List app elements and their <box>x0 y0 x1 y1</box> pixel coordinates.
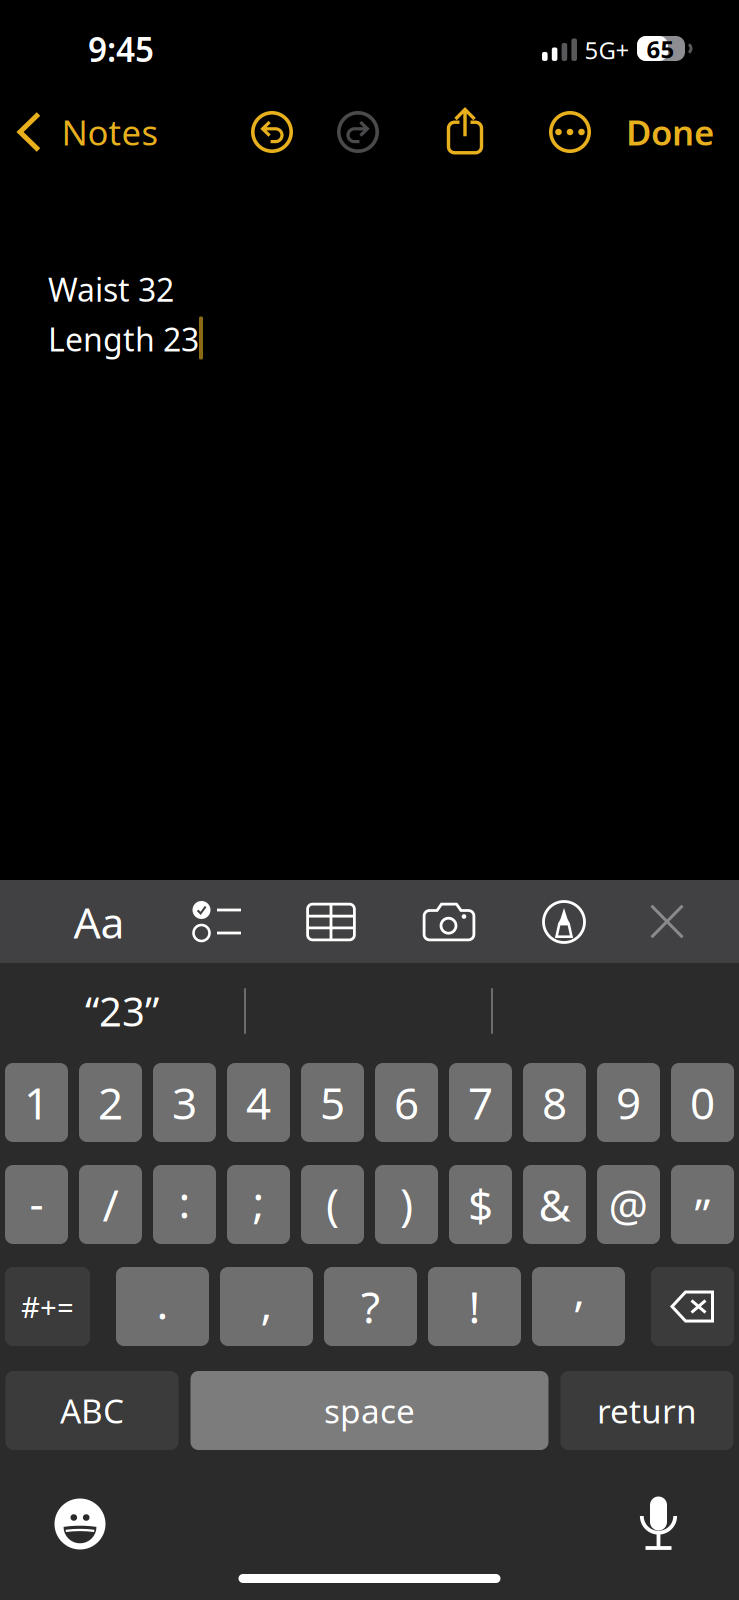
button[interactable]: Undo <box>251 111 293 153</box>
staticText: #+= <box>21 1287 74 1326</box>
staticText: space <box>324 1388 415 1433</box>
button[interactable]: 3 <box>153 1063 216 1142</box>
button[interactable]: More <box>547 109 593 155</box>
staticText: 5G+ <box>584 34 629 66</box>
button[interactable]: Delete <box>651 1267 734 1346</box>
button[interactable]: Redo <box>337 111 379 153</box>
staticText: 5 <box>320 1073 345 1132</box>
staticText: Length 23 <box>48 318 199 360</box>
staticText: ) <box>400 1174 413 1233</box>
button[interactable]: 4 <box>227 1063 290 1142</box>
button[interactable]: Markup <box>531 890 597 954</box>
staticText: 9 <box>616 1073 641 1132</box>
button[interactable]: 8 <box>523 1063 586 1142</box>
button[interactable]: 6 <box>375 1063 438 1142</box>
button[interactable]: return <box>560 1371 733 1450</box>
staticText: Notes <box>61 109 158 155</box>
button[interactable]: ) <box>375 1165 438 1244</box>
button[interactable]: ABC <box>5 1371 178 1450</box>
button[interactable]: $ <box>449 1165 512 1244</box>
staticText: ! <box>468 1277 480 1336</box>
button[interactable]: @ <box>597 1165 660 1244</box>
button[interactable]: Dictate <box>640 1496 677 1550</box>
button[interactable]: Done <box>610 100 730 164</box>
staticText: 6 <box>394 1073 419 1132</box>
button[interactable]: ; <box>227 1165 290 1244</box>
button[interactable]: 2 <box>79 1063 142 1142</box>
staticText: 8 <box>542 1073 567 1132</box>
staticText: ” <box>694 1184 710 1243</box>
button[interactable]: #+= <box>5 1267 90 1346</box>
staticText: $ <box>468 1175 493 1234</box>
staticText: ( <box>326 1174 339 1233</box>
staticText: 1 <box>24 1073 49 1132</box>
staticText: Done <box>626 109 714 155</box>
staticText: 9:45 <box>88 27 154 71</box>
staticText: : <box>178 1172 190 1231</box>
staticText: “23” <box>85 984 159 1037</box>
button[interactable]: ( <box>301 1165 364 1244</box>
button[interactable]: 1 <box>5 1063 68 1142</box>
staticText: ABC <box>60 1388 124 1433</box>
button[interactable]: Camera <box>414 890 484 954</box>
button[interactable]: Emoji <box>54 1498 105 1549</box>
staticText: 65 <box>646 33 674 65</box>
staticText: 0 <box>690 1073 715 1132</box>
button[interactable]: & <box>523 1165 586 1244</box>
staticText: . <box>156 1273 168 1332</box>
button[interactable]: Notes <box>0 100 172 164</box>
button[interactable]: space <box>190 1371 548 1450</box>
staticText: , <box>260 1273 272 1332</box>
button[interactable]: , <box>220 1267 313 1346</box>
button[interactable]: ? <box>324 1267 417 1346</box>
staticText: / <box>102 1175 118 1234</box>
button[interactable]: Checklist <box>184 890 250 954</box>
staticText: ? <box>361 1277 380 1336</box>
button[interactable]: : <box>153 1165 216 1244</box>
staticText: ’ <box>574 1286 582 1345</box>
button[interactable]: ! <box>428 1267 521 1346</box>
staticText: 3 <box>172 1073 197 1132</box>
button[interactable]: Format <box>66 890 132 954</box>
button[interactable]: 5 <box>301 1063 364 1142</box>
button[interactable]: 0 <box>671 1063 734 1142</box>
button[interactable]: Table <box>298 890 364 954</box>
staticText: return <box>597 1388 697 1433</box>
button[interactable]: ” <box>671 1165 734 1244</box>
button[interactable]: . <box>116 1267 209 1346</box>
button[interactable]: - <box>5 1165 68 1244</box>
button[interactable]: Share <box>441 107 487 157</box>
button[interactable]: ’ <box>532 1267 625 1346</box>
staticText: 2 <box>98 1073 123 1132</box>
staticText: - <box>29 1173 43 1232</box>
staticText: ; <box>252 1172 264 1231</box>
button[interactable]: / <box>79 1165 142 1244</box>
staticText: 7 <box>468 1073 493 1132</box>
staticText: & <box>538 1175 570 1234</box>
staticText: @ <box>608 1175 648 1234</box>
staticText: Waist 32 <box>48 268 174 310</box>
button[interactable]: 9 <box>597 1063 660 1142</box>
staticText: Aa <box>73 894 124 950</box>
staticText: 4 <box>246 1073 271 1132</box>
button[interactable]: 7 <box>449 1063 512 1142</box>
button[interactable]: Close keyboard <box>634 889 700 953</box>
